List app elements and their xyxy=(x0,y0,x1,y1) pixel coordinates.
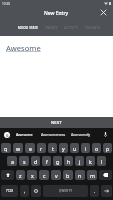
button[interactable]: ACTIVITY xyxy=(61,23,82,33)
staticText: New Entry xyxy=(44,10,69,17)
button[interactable]: MOOD STATE xyxy=(15,23,42,33)
button[interactable]: b xyxy=(63,170,73,180)
staticText: v xyxy=(55,172,58,179)
button[interactable]: i xyxy=(81,143,90,153)
button[interactable]: f xyxy=(42,156,51,166)
staticText: j xyxy=(79,158,81,165)
button[interactable]: z xyxy=(16,170,25,180)
button[interactable]: y xyxy=(59,143,68,153)
button[interactable]: x xyxy=(27,170,37,180)
button[interactable]: Period xyxy=(90,185,99,197)
staticText: b xyxy=(66,172,70,179)
staticText: QWERTY xyxy=(59,189,73,193)
button[interactable]: Awesomely xyxy=(67,128,94,141)
button[interactable]: v xyxy=(51,170,61,180)
staticText: r xyxy=(40,145,43,152)
button[interactable]: Google xyxy=(4,132,10,138)
staticText: q xyxy=(4,145,8,152)
staticText: ENERGY xyxy=(45,26,58,30)
button[interactable]: Comma xyxy=(20,185,29,197)
staticText: f xyxy=(46,158,48,165)
button[interactable]: Space xyxy=(43,185,88,197)
button[interactable]: a xyxy=(7,156,17,166)
staticText: y xyxy=(62,145,65,152)
staticText: THOUGHT xyxy=(85,26,101,30)
staticText: d xyxy=(34,158,38,165)
staticText: G xyxy=(6,133,9,138)
button[interactable]: Backspace xyxy=(99,170,112,180)
button[interactable]: w xyxy=(13,143,23,153)
staticText: n xyxy=(78,172,82,179)
staticText: m xyxy=(90,172,95,179)
staticText: i xyxy=(85,145,87,152)
button[interactable]: m xyxy=(87,170,97,180)
button[interactable]: Enter xyxy=(101,185,112,197)
staticText: p xyxy=(106,145,110,152)
staticText: l xyxy=(101,158,103,165)
staticText: c xyxy=(43,172,46,179)
staticText: z xyxy=(19,172,22,179)
staticText: ACTIVITY xyxy=(64,26,79,30)
staticText: 10:30 xyxy=(2,2,11,6)
staticText: k xyxy=(89,158,92,165)
staticText: Awesomeness xyxy=(41,132,66,137)
staticText: t xyxy=(52,145,54,152)
button[interactable]: Awesomeness xyxy=(38,128,68,141)
button[interactable]: o xyxy=(92,143,101,153)
button[interactable]: r xyxy=(37,143,46,153)
button[interactable]: NEXT xyxy=(0,117,113,128)
button[interactable]: u xyxy=(70,143,79,153)
button[interactable]: Awesome xyxy=(13,128,35,141)
button[interactable]: Voice input xyxy=(100,128,111,141)
button[interactable]: t xyxy=(48,143,57,153)
button[interactable]: ENERGY xyxy=(42,23,61,33)
staticText: x xyxy=(31,172,34,179)
staticText: s xyxy=(23,158,26,165)
staticText: . xyxy=(94,188,96,194)
button[interactable]: Close xyxy=(98,7,109,18)
button[interactable]: Shift xyxy=(1,170,14,180)
button[interactable]: THOUGHT xyxy=(82,23,104,33)
button[interactable]: l xyxy=(97,156,106,166)
staticText: ?123 xyxy=(6,189,13,193)
staticText: w xyxy=(16,145,21,152)
button[interactable]: e xyxy=(25,143,35,153)
button[interactable]: n xyxy=(75,170,85,180)
button[interactable]: k xyxy=(86,156,95,166)
staticText: , xyxy=(24,188,26,194)
staticText: e xyxy=(29,145,32,152)
staticText: g xyxy=(56,158,60,165)
staticText: NEXT xyxy=(51,120,63,125)
staticText: Awesomely xyxy=(71,132,91,137)
button[interactable]: g xyxy=(53,156,62,166)
staticText: Awesome xyxy=(16,132,33,137)
staticText: h xyxy=(67,158,71,165)
button[interactable]: c xyxy=(39,170,49,180)
button[interactable]: Language xyxy=(31,185,41,197)
staticText: u xyxy=(73,145,77,152)
button[interactable]: s xyxy=(19,156,29,166)
button[interactable]: j xyxy=(75,156,84,166)
staticText: a xyxy=(11,158,14,165)
button[interactable]: p xyxy=(103,143,112,153)
button[interactable]: h xyxy=(64,156,73,166)
button[interactable]: q xyxy=(1,143,11,153)
button[interactable]: d xyxy=(31,156,40,166)
button[interactable]: Symbols xyxy=(1,185,18,197)
staticText: o xyxy=(95,145,99,152)
staticText: MOOD STATE xyxy=(18,26,39,30)
staticText: Awesome xyxy=(6,43,41,53)
